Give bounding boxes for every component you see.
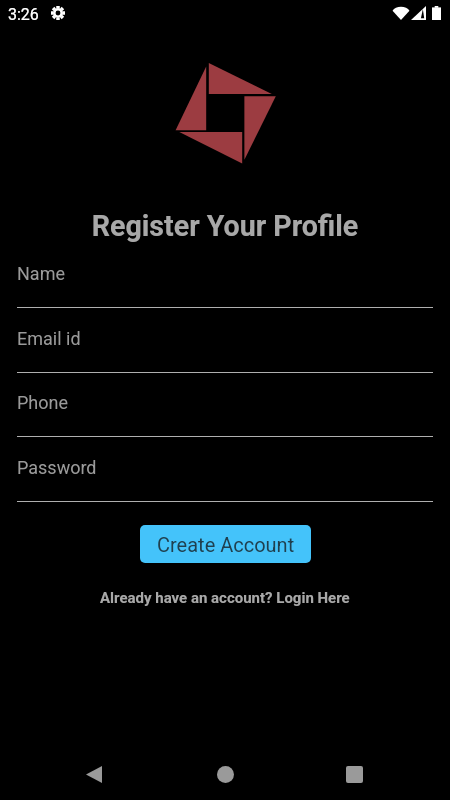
staticText: Already have an account? Login Here — [100, 589, 350, 607]
button[interactable]: Recent apps — [330, 750, 378, 798]
staticText: Register Your Profile — [0, 209, 450, 243]
staticText: Password — [17, 457, 97, 478]
staticText: Email id — [17, 328, 81, 349]
button[interactable]: Home — [201, 750, 249, 798]
staticText: 3:26 — [8, 5, 39, 24]
button[interactable]: Already have an account? Login Here — [94, 586, 356, 610]
staticText: Create Account — [157, 533, 295, 556]
button[interactable]: Back — [70, 750, 118, 798]
button[interactable]: Email id — [17, 328, 433, 349]
button[interactable]: Create Account — [140, 525, 311, 563]
button[interactable]: Phone — [17, 392, 433, 413]
staticText: Name — [17, 263, 65, 284]
button[interactable]: Password — [17, 457, 433, 478]
button[interactable]: Name — [17, 263, 433, 284]
staticText: Phone — [17, 392, 69, 413]
